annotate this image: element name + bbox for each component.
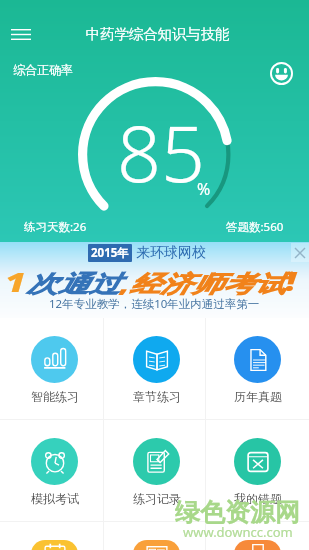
staticText: 1 (5, 264, 26, 300)
staticText: ,经济师考试 (120, 267, 286, 299)
button[interactable]: Close ad (291, 243, 309, 262)
staticText: % (197, 178, 211, 200)
button[interactable]: 模拟考试 (0, 420, 103, 521)
staticText: 答题数:560 (226, 219, 284, 235)
button[interactable]: 考试资讯 (104, 522, 205, 550)
button[interactable]: 练习记录 (104, 420, 205, 521)
staticText: 练习天数:26 (24, 219, 87, 235)
staticText: 综合正确率 (13, 62, 73, 77)
staticText: 12年专业教学，连续10年业内通过率第一 (49, 296, 260, 312)
button[interactable]: 2015年 (0, 242, 309, 318)
button[interactable]: Mood (266, 58, 296, 88)
staticText: 次通过 (26, 270, 120, 299)
staticText: ! (286, 264, 296, 299)
staticText: 我的错题 (234, 491, 282, 506)
staticText: 模拟考试 (31, 491, 79, 506)
staticText: 来环球网校 (136, 244, 206, 262)
staticText: www.downcc.com (183, 523, 293, 541)
staticText: 历年真题 (234, 389, 282, 404)
button[interactable]: 历年真题 (206, 318, 309, 419)
staticText: 中药学综合知识与技能 (3, 25, 309, 43)
staticText: 章节练习 (133, 389, 181, 404)
staticText: 绿色资源网 (175, 497, 300, 528)
button[interactable]: 智能练习 (0, 318, 103, 419)
button[interactable]: Menu (3, 20, 39, 48)
staticText: 智能练习 (31, 389, 79, 404)
button[interactable]: 我的错题 (206, 420, 309, 521)
staticText: 85 (117, 100, 205, 205)
staticText: 2015年 (91, 245, 129, 261)
button[interactable]: 章节练习 (104, 318, 205, 419)
staticText: 练习记录 (133, 491, 181, 506)
button[interactable]: 每日一练 (0, 522, 103, 550)
button[interactable]: 我的收藏 (206, 522, 309, 550)
